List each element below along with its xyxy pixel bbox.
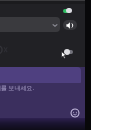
- button[interactable]: Toggle on: [63, 8, 72, 13]
- button[interactable]: Toggle off: [64, 49, 74, 55]
- button[interactable]: Emoji: [70, 108, 80, 118]
- button[interactable]: Speaker: [63, 20, 77, 30]
- staticText: 메시지를 보내세요.: [0, 84, 35, 92]
- button[interactable]: [0, 17, 60, 32]
